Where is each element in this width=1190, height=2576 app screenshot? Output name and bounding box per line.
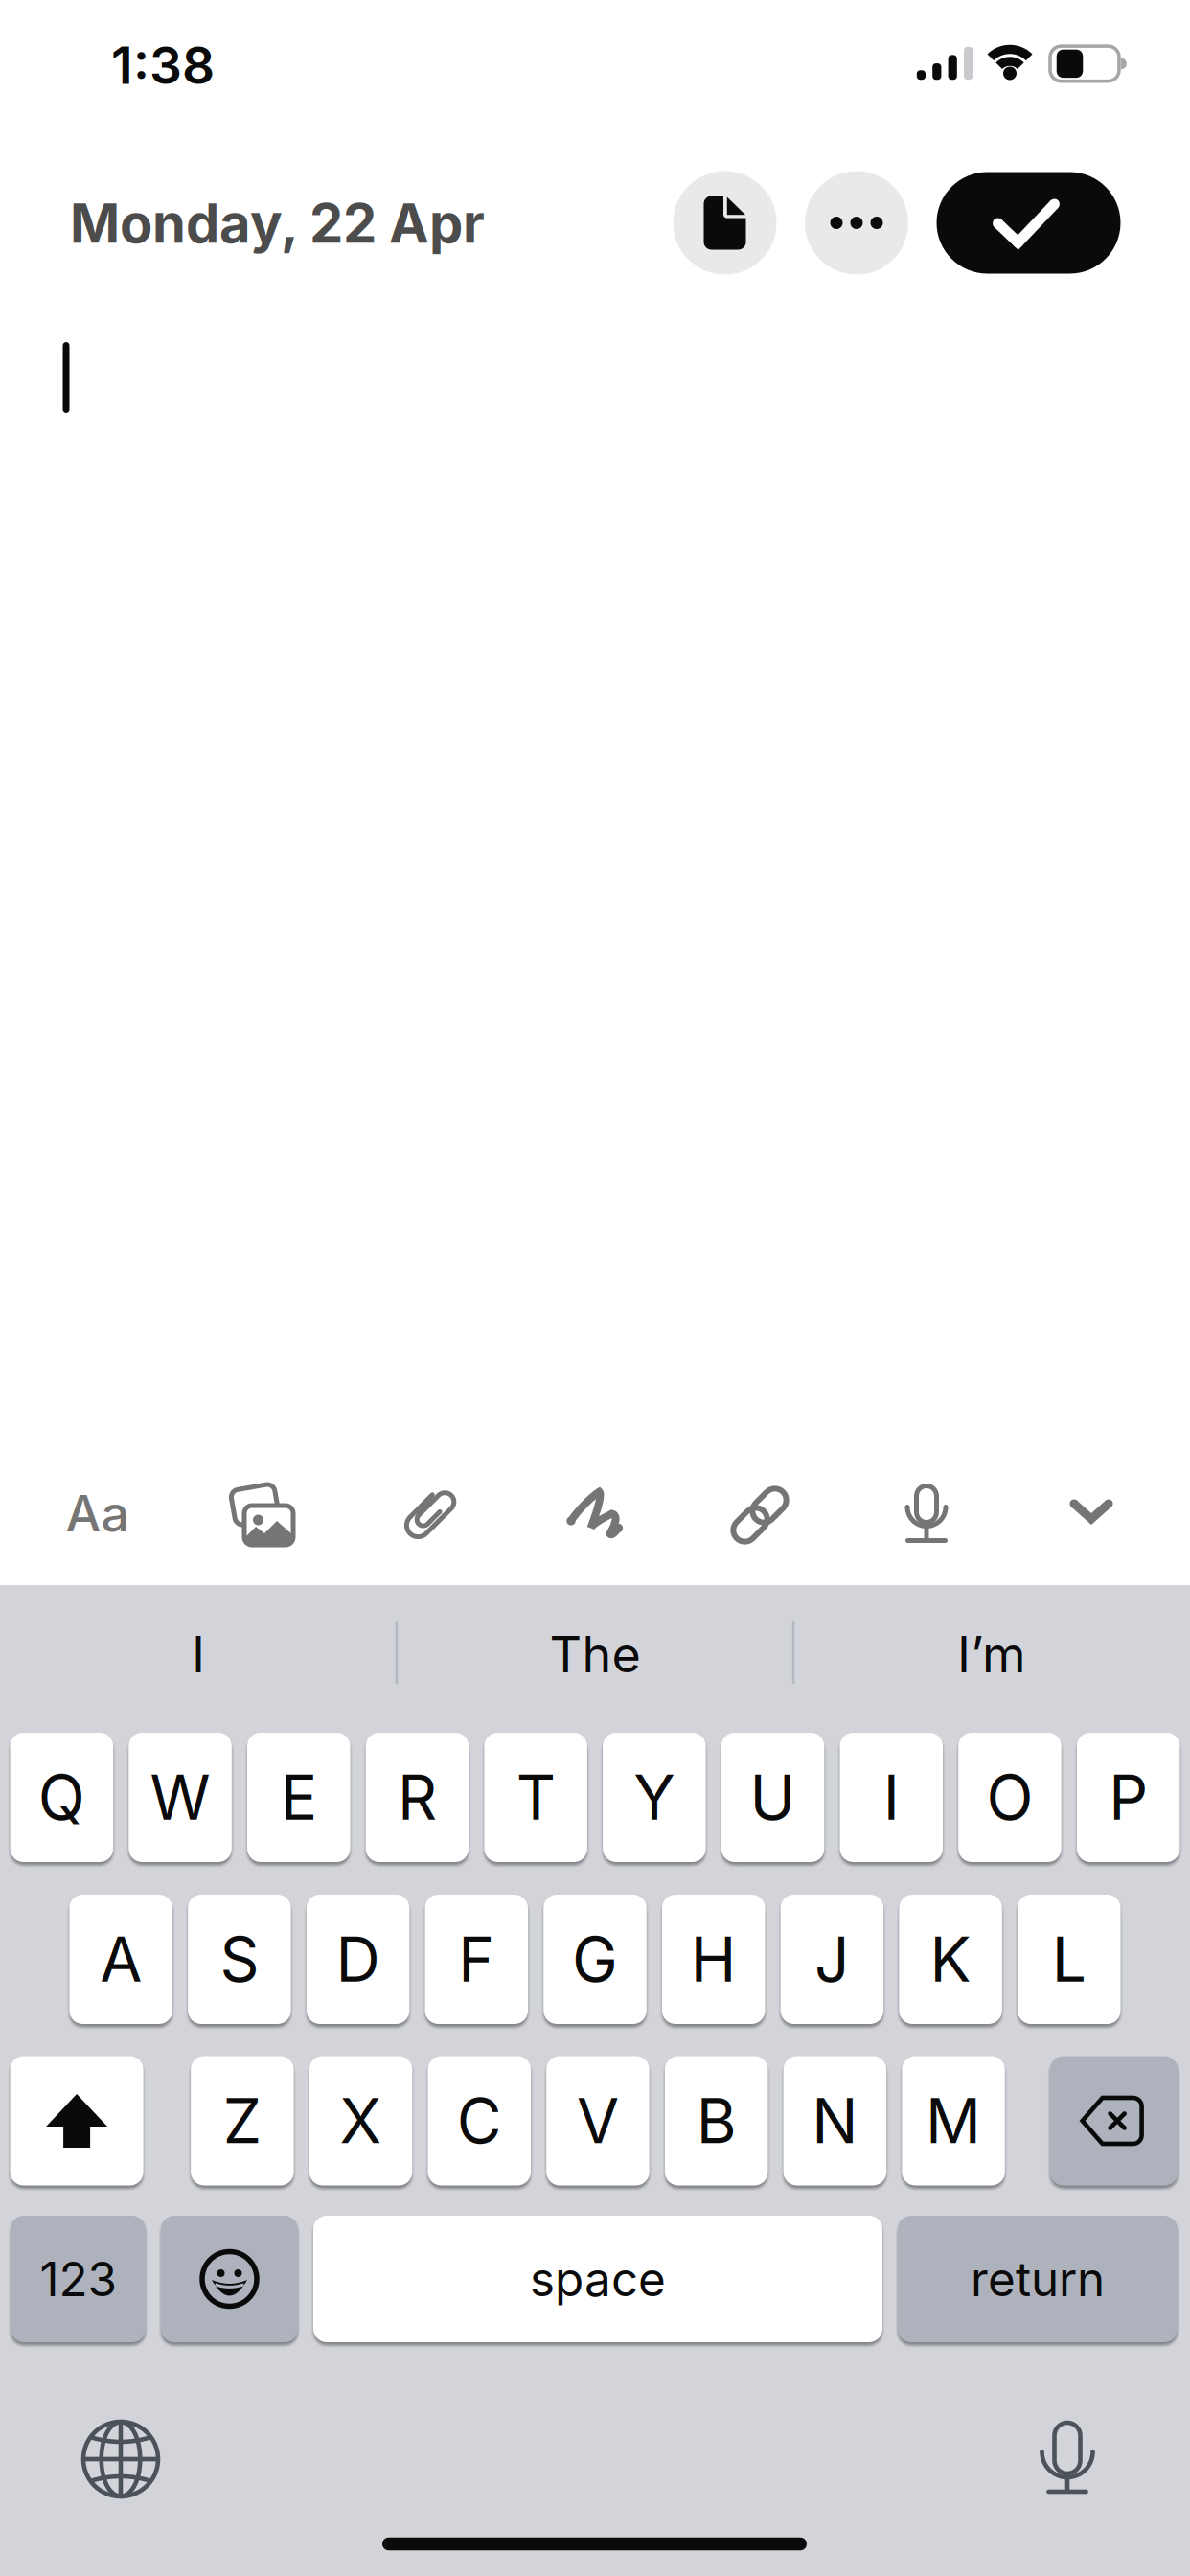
button[interactable]: L [1018,1895,1121,2024]
staticText: I [192,1625,205,1683]
staticText: J [814,1923,850,1995]
button[interactable] [80,2419,161,2499]
button[interactable]: P [1077,1733,1180,1862]
button[interactable]: I’m [800,1611,1183,1697]
button[interactable]: D [307,1895,410,2024]
staticText: 1:38 [111,35,215,95]
button[interactable] [230,1482,295,1547]
button[interactable]: I [840,1733,943,1862]
button[interactable]: W [129,1733,232,1862]
staticText: E [281,1761,317,1833]
button[interactable] [905,1486,948,1542]
staticText: G [572,1923,618,1995]
staticText: M [926,2085,981,2157]
staticText: H [691,1923,737,1995]
staticText: Monday, 22 Apr [70,192,485,255]
button[interactable]: space [313,2216,882,2342]
button[interactable] [1050,2056,1178,2185]
staticText: B [696,2085,737,2157]
button[interactable]: J [781,1895,884,2024]
button[interactable] [568,1489,622,1538]
button[interactable]: return [898,2216,1178,2342]
staticText: 123 [40,2251,116,2307]
button[interactable]: F [425,1895,528,2024]
staticText: X [340,2085,382,2157]
staticText: I [883,1761,899,1833]
button[interactable] [937,172,1121,274]
staticText: Z [223,2085,261,2157]
button[interactable]: Q [10,1733,113,1862]
button[interactable]: The [403,1611,787,1697]
button[interactable]: Y [603,1733,706,1862]
staticText: Q [38,1761,85,1833]
button[interactable]: E [247,1733,350,1862]
staticText: Y [634,1761,675,1833]
staticText: K [930,1923,971,1995]
staticText: L [1052,1923,1086,1995]
button[interactable]: H [662,1895,765,2024]
staticText: Aa [66,1484,130,1543]
button[interactable]: R [366,1733,469,1862]
button[interactable]: V [546,2056,649,2185]
button[interactable]: A [69,1895,172,2024]
button[interactable]: O [958,1733,1061,1862]
staticText: T [516,1761,555,1833]
staticText: I’m [957,1625,1026,1683]
button[interactable]: C [428,2056,531,2185]
button[interactable] [805,171,908,275]
staticText: P [1109,1761,1148,1833]
staticText: O [986,1761,1033,1833]
staticText: S [220,1923,259,1995]
button[interactable]: S [188,1895,291,2024]
button[interactable]: X [309,2056,412,2185]
button[interactable]: G [543,1895,646,2024]
staticText: D [336,1923,380,1995]
button[interactable]: K [899,1895,1002,2024]
button[interactable] [161,2216,298,2342]
staticText: space [530,2251,666,2307]
button[interactable]: M [902,2056,1005,2185]
staticText: C [457,2085,502,2157]
staticText: F [458,1923,495,1995]
staticText: R [398,1761,437,1833]
button[interactable]: 123 [11,2216,146,2342]
button[interactable]: B [665,2056,768,2185]
staticText: A [100,1923,142,1995]
button[interactable] [1069,1499,1113,1524]
button[interactable] [399,1485,458,1545]
button[interactable]: U [721,1733,824,1862]
button[interactable]: Z [191,2056,294,2185]
staticText: N [812,2085,858,2157]
button[interactable]: Aa [66,1484,130,1543]
staticText: W [150,1761,210,1833]
button[interactable] [1040,2423,1095,2494]
staticText: return [971,2251,1105,2307]
button[interactable]: T [484,1733,587,1862]
staticText: V [577,2085,619,2157]
staticText: U [750,1761,796,1833]
button[interactable]: I [7,1611,390,1697]
button[interactable] [673,171,777,275]
button[interactable]: N [783,2056,886,2185]
button[interactable] [10,2056,143,2185]
button[interactable] [730,1485,790,1545]
staticText: The [549,1625,641,1683]
